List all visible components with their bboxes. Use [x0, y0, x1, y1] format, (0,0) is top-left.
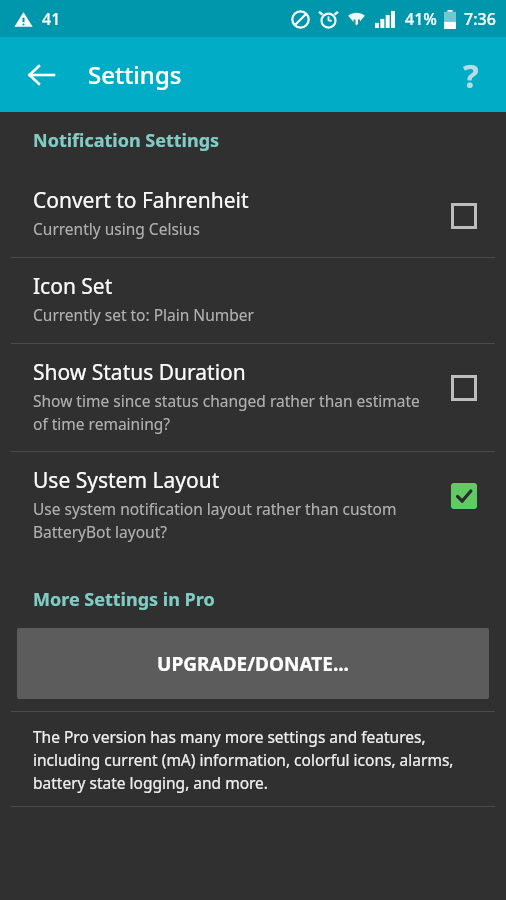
staticText: ?: [463, 53, 479, 98]
staticText: More Settings in Pro: [33, 587, 215, 612]
staticText: Icon Set: [33, 272, 113, 301]
button[interactable]: Use System Layout: [0, 452, 506, 543]
button[interactable]: Icon Set: [0, 258, 506, 325]
staticText: 7:36: [464, 8, 496, 30]
staticText: Show time since status changed rather th…: [33, 390, 430, 435]
button[interactable]: Convert to Fahrenheit: [0, 172, 506, 239]
staticText: 41%: [405, 8, 437, 30]
button[interactable]: Show Status Duration: [444, 368, 484, 408]
staticText: Convert to Fahrenheit: [33, 186, 249, 215]
staticText: Use system notification layout rather th…: [33, 498, 430, 543]
staticText: Notification Settings: [33, 128, 220, 153]
staticText: Currently using Celsius: [33, 218, 200, 239]
button[interactable]: Back: [17, 51, 65, 99]
staticText: Settings: [88, 58, 182, 91]
button[interactable]: Convert to Fahrenheit: [444, 196, 484, 236]
staticText: Use System Layout: [33, 466, 220, 495]
button[interactable]: Show Status Duration: [0, 344, 506, 435]
button[interactable]: Help: [447, 51, 495, 99]
button[interactable]: Use System Layout: [444, 476, 484, 516]
staticText: The Pro version has many more settings a…: [33, 726, 484, 794]
staticText: 41: [42, 8, 61, 30]
staticText: Currently set to: Plain Number: [33, 304, 254, 325]
staticText: UPGRADE/DONATE...: [157, 651, 349, 677]
button[interactable]: UPGRADE/DONATE...: [17, 628, 489, 699]
staticText: Show Status Duration: [33, 358, 246, 387]
